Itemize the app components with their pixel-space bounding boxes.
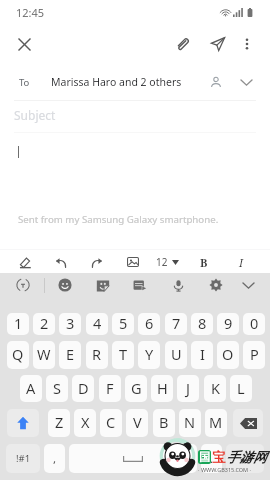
staticText: C	[106, 412, 116, 432]
button[interactable]: 1	[7, 313, 29, 335]
staticText: I	[200, 344, 205, 364]
staticText: 6	[145, 313, 154, 333]
staticText: 宝	[212, 449, 226, 466]
staticText: 9	[224, 313, 233, 333]
button[interactable]: Emoji	[53, 273, 77, 297]
button[interactable]: GIF	[128, 273, 152, 297]
button[interactable]: 6	[138, 313, 160, 335]
button[interactable]: U	[165, 341, 187, 369]
button[interactable]: Period	[201, 444, 222, 473]
staticText: A	[26, 378, 36, 398]
button[interactable]: Translate	[11, 273, 35, 297]
button[interactable]: Close	[12, 32, 36, 56]
staticText: D	[78, 378, 89, 398]
button[interactable]: D	[72, 375, 94, 402]
button[interactable]: Expand	[235, 71, 257, 93]
staticText: G	[131, 378, 142, 398]
button[interactable]: Q	[7, 341, 29, 369]
button[interactable]: 2	[33, 313, 55, 335]
button[interactable]: Backspace	[233, 409, 263, 437]
button[interactable]: 9	[217, 313, 239, 335]
staticText: L	[237, 378, 245, 398]
button[interactable]: W	[33, 341, 55, 369]
staticText: W	[37, 344, 51, 364]
staticText: R	[92, 344, 102, 364]
staticText: O	[222, 344, 234, 364]
button[interactable]: S	[46, 375, 68, 402]
button[interactable]: Stickers	[91, 273, 115, 297]
button[interactable]: Redo	[85, 250, 109, 273]
button[interactable]: Symbols	[6, 444, 40, 473]
button[interactable]: Insert image	[121, 250, 145, 273]
button[interactable]: X	[74, 409, 96, 437]
button[interactable]: 8	[191, 313, 213, 335]
button[interactable]: J	[177, 375, 199, 402]
button[interactable]: Sent from my Samsung Galaxy smartphone.	[0, 133, 270, 249]
staticText: E	[66, 344, 75, 364]
button[interactable]: I	[230, 251, 252, 273]
button[interactable]: Enter	[226, 444, 264, 473]
staticText: Subject	[14, 107, 56, 123]
button[interactable]: E	[59, 341, 81, 369]
staticText: Y	[145, 344, 154, 364]
button[interactable]: Voice input	[166, 273, 190, 297]
button[interactable]: 0	[243, 313, 265, 335]
button[interactable]: 12	[153, 255, 182, 269]
button[interactable]: A	[20, 375, 42, 402]
button[interactable]: 3	[59, 313, 81, 335]
button[interactable]: P	[243, 341, 265, 369]
staticText: 12	[156, 255, 168, 269]
staticText: Marissa Haro and 2 others	[51, 75, 182, 89]
staticText: B	[159, 412, 169, 432]
staticText: 4	[93, 313, 102, 333]
button[interactable]: R	[86, 341, 108, 369]
button[interactable]: Y	[138, 341, 160, 369]
button[interactable]: Shift	[7, 409, 39, 437]
button[interactable]: G	[125, 375, 147, 402]
staticText: K	[211, 378, 220, 398]
button[interactable]: I	[191, 341, 213, 369]
button[interactable]: V	[126, 409, 148, 437]
staticText: .	[210, 451, 214, 467]
button[interactable]: F	[99, 375, 121, 402]
button[interactable]: Attach	[170, 31, 196, 57]
staticText: 8	[198, 313, 207, 333]
button[interactable]: Format	[13, 250, 37, 273]
button[interactable]: Subject	[0, 101, 270, 132]
button[interactable]: Space	[69, 444, 197, 473]
button[interactable]: T	[112, 341, 134, 369]
button[interactable]: K	[204, 375, 226, 402]
button[interactable]: Undo	[49, 250, 73, 273]
staticText: 12:45	[16, 5, 45, 20]
button[interactable]: B	[153, 409, 175, 437]
button[interactable]: L	[230, 375, 252, 402]
button[interactable]: Send	[205, 31, 231, 57]
staticText: I	[239, 255, 244, 270]
button[interactable]: O	[217, 341, 239, 369]
button[interactable]: Contacts	[205, 71, 227, 93]
staticText: 3	[66, 313, 75, 333]
button[interactable]: 4	[86, 313, 108, 335]
staticText: 国	[199, 450, 210, 464]
button[interactable]: B	[193, 251, 215, 273]
button[interactable]: C	[100, 409, 122, 437]
staticText: ,	[53, 451, 57, 467]
staticText: Q	[12, 344, 24, 364]
button[interactable]: H	[151, 375, 173, 402]
button[interactable]: Keyboard settings	[204, 273, 228, 297]
button[interactable]: 5	[112, 313, 134, 335]
staticText: Sent from my Samsung Galaxy smartphone.	[18, 213, 219, 226]
staticText: 2	[40, 313, 49, 333]
button[interactable]: Comma	[44, 444, 65, 473]
staticText: S	[53, 378, 61, 398]
button[interactable]: M	[205, 409, 227, 437]
button[interactable]: More options	[234, 31, 260, 57]
staticText: T	[119, 344, 128, 364]
button[interactable]: To	[0, 64, 270, 100]
button[interactable]: N	[179, 409, 201, 437]
staticText: B	[200, 255, 208, 270]
button[interactable]: Z	[48, 409, 70, 437]
staticText: N	[184, 412, 196, 432]
button[interactable]: 7	[165, 313, 187, 335]
button[interactable]: Collapse keyboard	[236, 273, 260, 297]
